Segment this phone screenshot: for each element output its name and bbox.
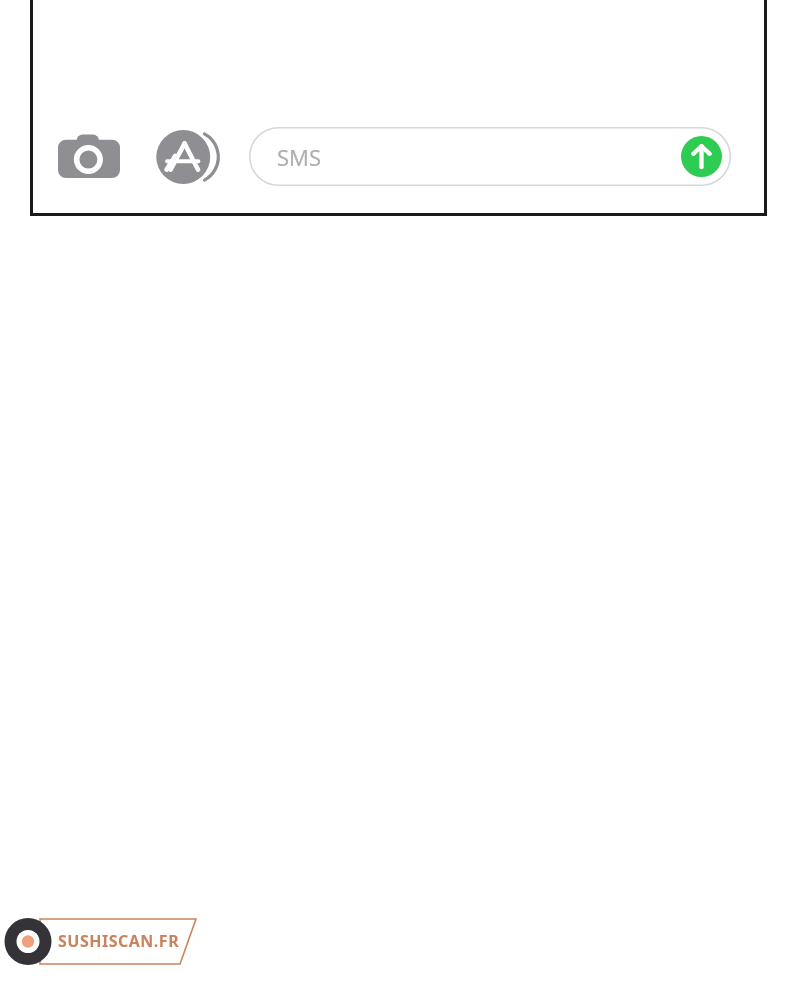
button[interactable]: Send (681, 136, 722, 177)
button[interactable]: App Store (155, 128, 219, 186)
button[interactable]: SMS (249, 127, 731, 186)
staticText: SMS (277, 142, 322, 172)
staticText: SUSHISCAN.FR (58, 930, 180, 952)
button[interactable]: Camera (58, 132, 120, 180)
